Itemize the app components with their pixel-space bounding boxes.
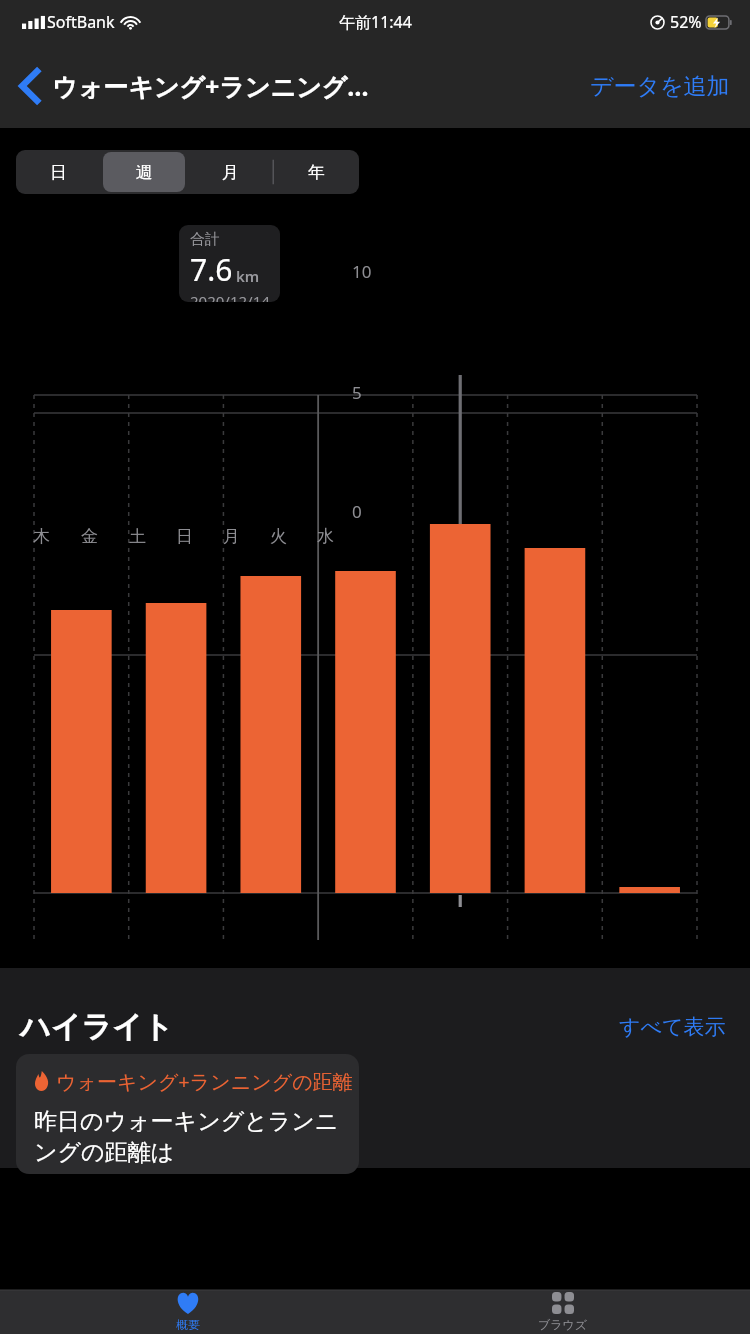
staticText: すべて表示 [619,1014,726,1040]
staticText: 日 [176,526,193,547]
staticText: 土 [129,526,146,547]
button[interactable]: ブラウズ [375,1290,750,1334]
button[interactable]: 日 [18,152,99,192]
staticText: 月 [223,526,240,547]
staticText: 5 [352,381,362,404]
staticText: 7.6 [190,249,233,290]
staticText: 52% [670,11,702,33]
staticText: 昨日のウォーキングとランニングの距離は [34,1107,359,1167]
staticText: 月 [222,162,239,183]
staticText: 合計 [190,230,220,249]
staticText: 平均よりも長かったようです。 [34,1173,359,1174]
button[interactable]: 戻る [0,55,62,117]
staticText: 週 [136,162,153,183]
button[interactable]: 月 [189,152,271,192]
staticText: 年 [308,162,325,183]
staticText: 火 [270,526,287,547]
staticText: ブラウズ [538,1317,588,1332]
staticText: ウォーキング+ランニングの距離 [56,1068,353,1095]
staticText: 日 [50,162,67,183]
staticText: ハイライト [20,1008,174,1046]
staticText: 水 [317,526,334,547]
button[interactable]: 年 [275,152,357,192]
staticText: 概要 [176,1317,200,1332]
staticText: 木 [33,526,50,547]
staticText: km [236,266,260,286]
button[interactable]: データを追加 [584,64,736,109]
staticText: SoftBank [47,11,115,33]
staticText: 2020/12/14 [190,291,270,302]
button[interactable]: 概要 [0,1290,375,1334]
button[interactable]: すべて表示 [615,1008,730,1046]
staticText: ウォーキング+ランニング… [52,69,369,103]
staticText: 10 [352,260,372,283]
button[interactable]: ウォーキング+ランニングの距離 [16,1054,359,1174]
staticText: 午前11:44 [339,11,412,33]
button[interactable]: 週 [103,152,185,192]
staticText: 金 [81,526,98,547]
staticText: データを追加 [590,72,730,101]
staticText: 0 [352,500,362,523]
